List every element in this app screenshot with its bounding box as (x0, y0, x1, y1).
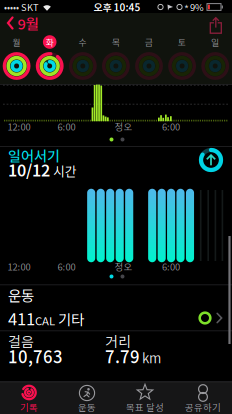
staticText: 토 (178, 36, 186, 48)
staticText: ••••• (4, 1, 19, 13)
button[interactable]: 일요일 (200, 51, 230, 81)
staticText: 금 (145, 36, 153, 48)
staticText: 화 (46, 36, 54, 48)
staticText: 9% (190, 0, 204, 14)
staticText: 12:00 (7, 260, 30, 273)
button[interactable]: 화요일 (35, 51, 65, 81)
staticText: 9월 (17, 12, 38, 34)
staticText: 411 (8, 306, 35, 330)
button[interactable]: 목요일 (101, 51, 131, 81)
staticText: SKT (21, 0, 39, 14)
staticText: 수 (79, 36, 87, 48)
staticText: 목표 달성 (126, 400, 164, 414)
button[interactable]: 9월 (1, 14, 46, 32)
staticText: 운동 (8, 284, 34, 306)
button[interactable]: 411 (0, 305, 232, 331)
staticText: 7.79 (105, 344, 140, 368)
staticText: 10/12 (8, 158, 50, 181)
button[interactable]: 월요일 (2, 51, 32, 81)
staticText: 일 (211, 36, 219, 48)
staticText: 6:00 (57, 260, 75, 273)
staticText: 정오 (114, 120, 132, 133)
staticText: 6:00 (162, 120, 180, 133)
staticText: 6:00 (57, 120, 75, 133)
button[interactable]: 운동 (58, 381, 116, 414)
button[interactable]: 토요일 (167, 51, 197, 81)
button[interactable]: 금요일 (134, 51, 164, 81)
staticText: 정오 (114, 260, 132, 273)
staticText: 12:00 (7, 120, 30, 133)
staticText: km (142, 348, 161, 367)
button[interactable]: 공유하기 (174, 381, 232, 414)
staticText: 월 (13, 36, 21, 48)
staticText: * (184, 0, 189, 16)
staticText: 공유하기 (185, 400, 221, 414)
staticText: 6:00 (162, 260, 180, 273)
staticText: 시간 (53, 162, 77, 180)
button[interactable]: 공유 (209, 17, 222, 34)
staticText: 오후 10:45 (93, 0, 140, 14)
staticText: 10,763 (8, 344, 63, 368)
staticText: 일어서기 (8, 145, 60, 166)
button[interactable]: 목표 달성 (116, 381, 174, 414)
staticText: 운동 (78, 400, 96, 414)
staticText: 걸음 (8, 331, 34, 351)
staticText: 목 (112, 36, 120, 48)
button[interactable]: 기록 (0, 381, 58, 414)
staticText: 기록 (20, 400, 38, 414)
staticText: CAL (35, 312, 55, 328)
staticText: 기타 (55, 308, 84, 329)
button[interactable]: 수요일 (68, 51, 98, 81)
staticText: 거리 (105, 331, 131, 351)
